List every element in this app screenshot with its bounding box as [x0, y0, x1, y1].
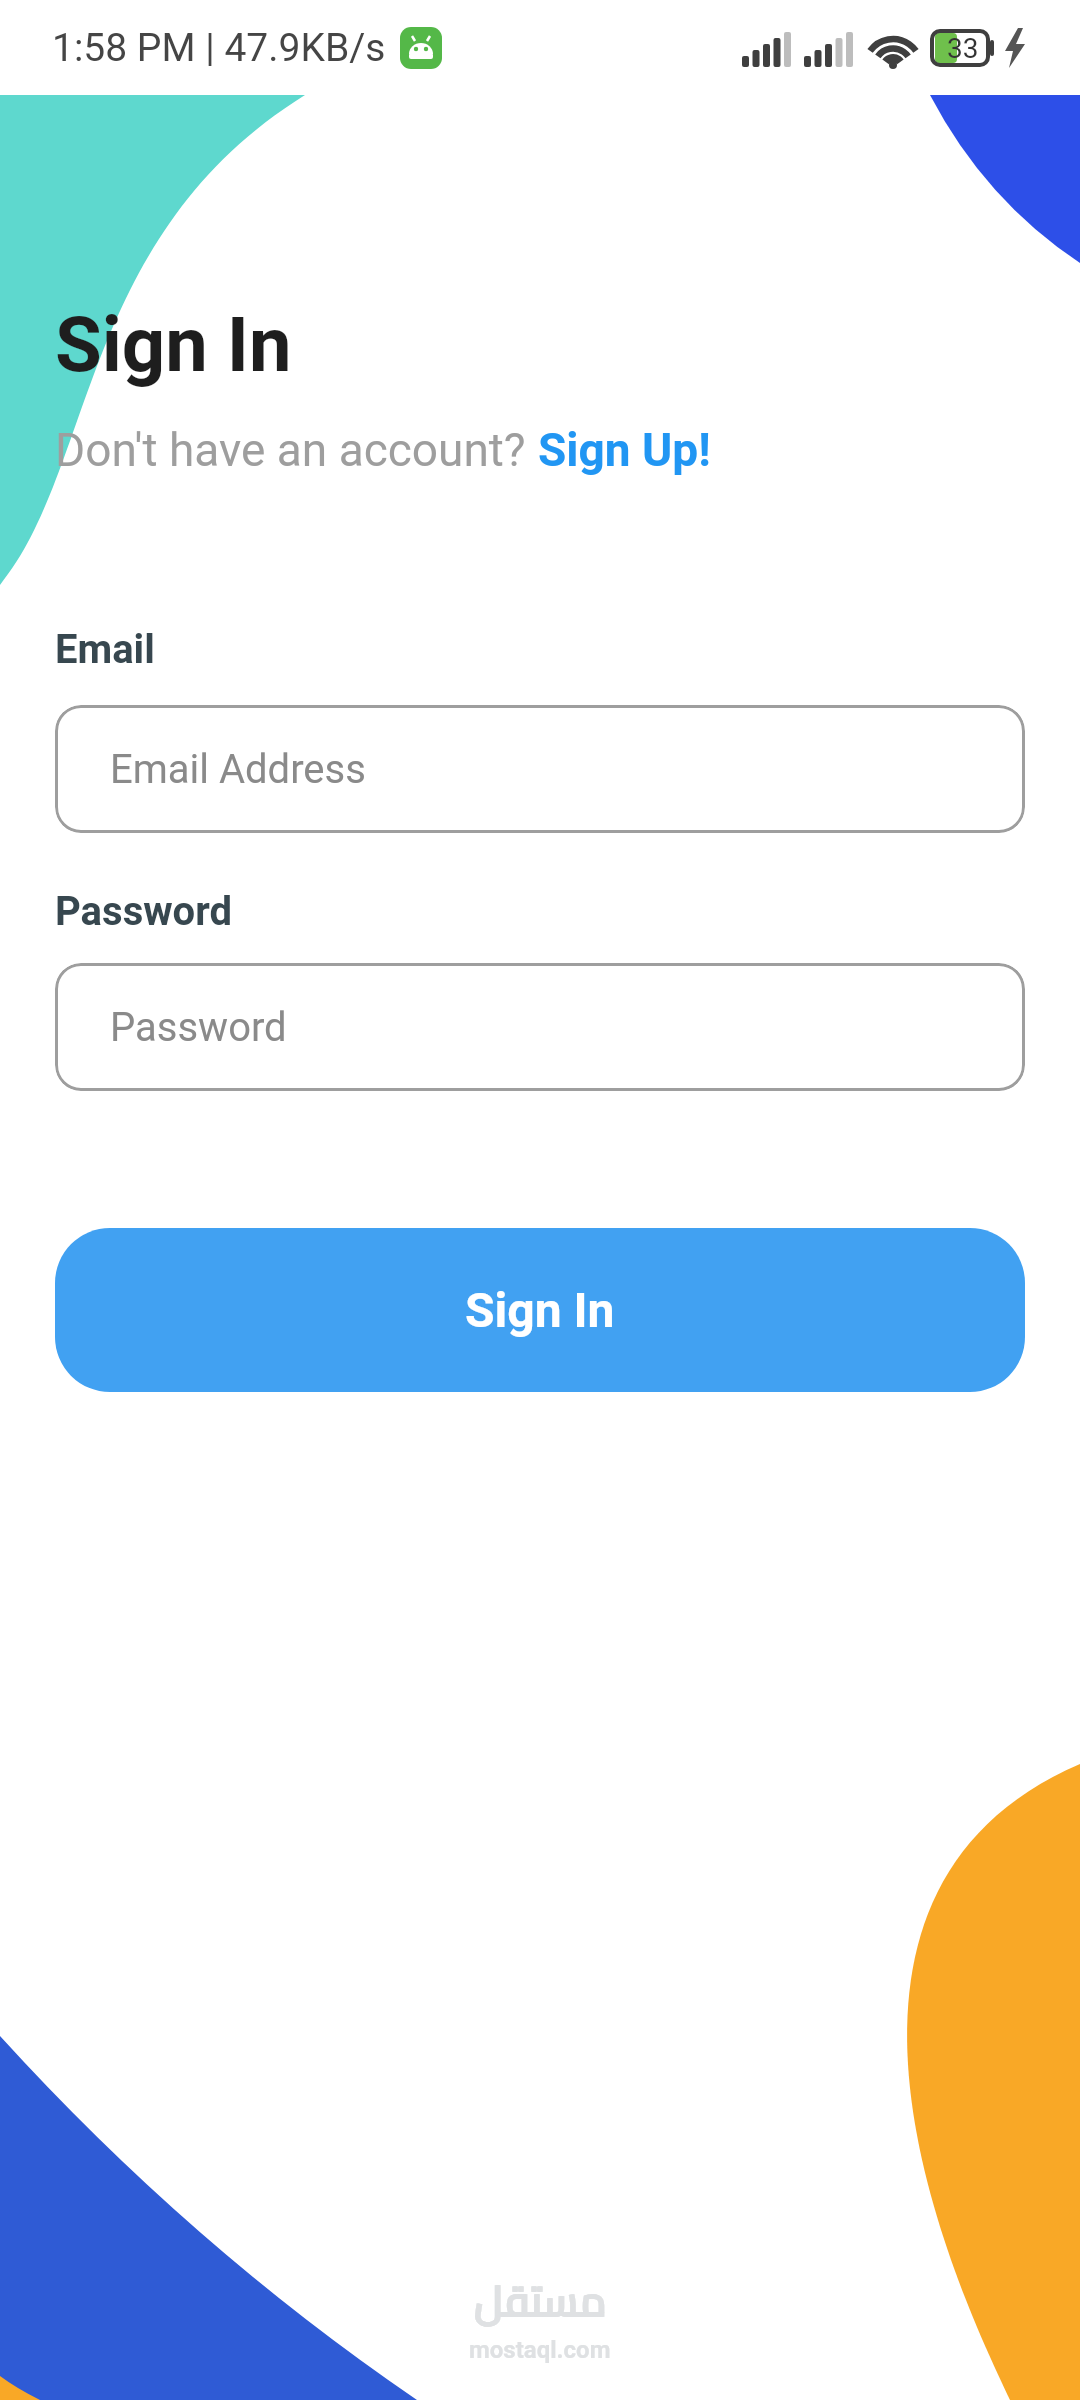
- staticText: Password: [110, 1004, 287, 1051]
- staticText: 1:58 PM | 47.9KB/s: [52, 25, 386, 71]
- button[interactable]: Email Address: [55, 705, 1025, 833]
- staticText: Email: [55, 626, 155, 673]
- staticText: Password: [55, 888, 233, 935]
- staticText: Don't have an account?: [55, 423, 538, 477]
- button[interactable]: Password: [55, 963, 1025, 1091]
- staticText: مستقل: [475, 2261, 607, 2340]
- staticText: 33: [947, 32, 979, 65]
- button[interactable]: Sign In: [55, 1228, 1025, 1392]
- staticText: Sign In: [465, 1282, 615, 1338]
- button[interactable]: Sign Up!: [538, 423, 711, 477]
- staticText: مستقل: [474, 2261, 606, 2340]
- staticText: mostaql.com: [469, 2336, 611, 2364]
- staticText: Email Address: [110, 746, 366, 793]
- staticText: Sign In: [55, 300, 292, 389]
